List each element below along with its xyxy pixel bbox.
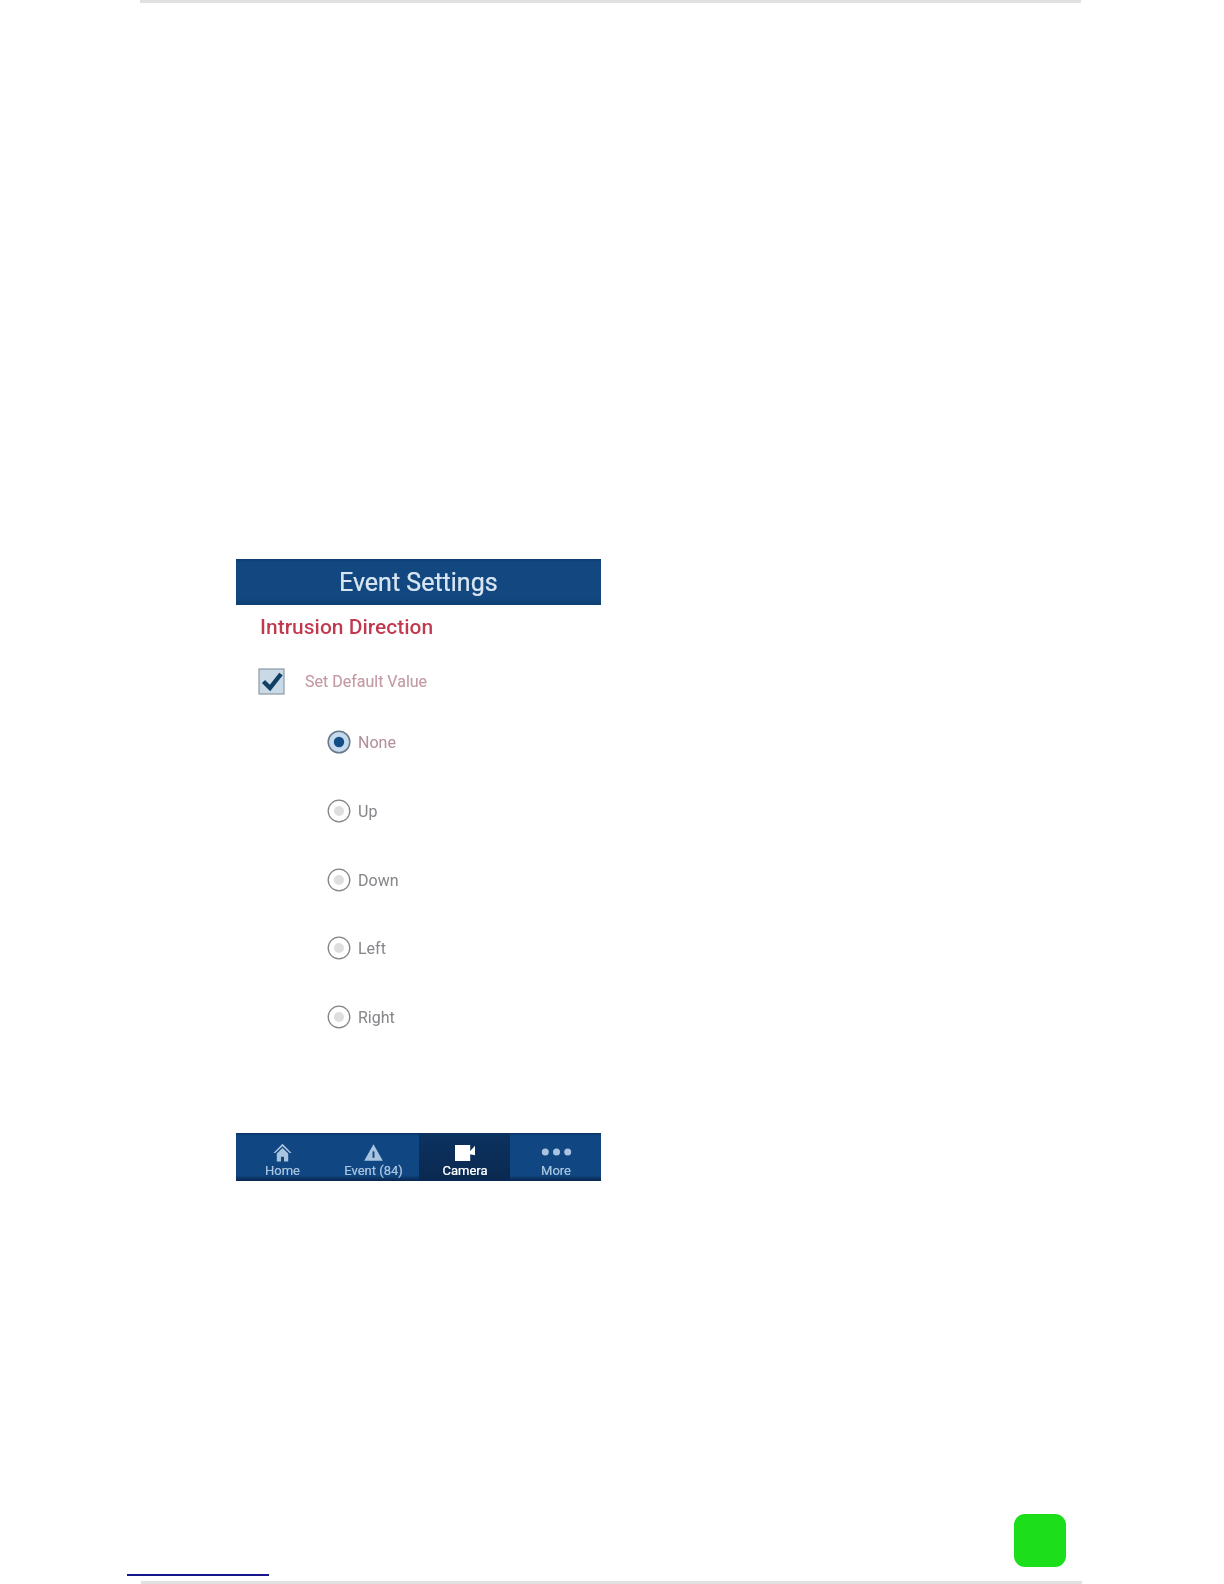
button[interactable]: Left [236,932,601,964]
button[interactable]: More [510,1133,601,1181]
button[interactable]: Events [328,1133,419,1181]
staticText: Home [265,1163,300,1178]
button[interactable]: Right [236,1001,601,1033]
staticText: Intrusion Direction [260,615,434,640]
staticText: Event Settings [339,568,498,597]
staticText: Left [358,939,386,958]
staticText: More [541,1163,571,1178]
staticText: Up [358,802,378,821]
staticText: Camera [442,1163,488,1178]
button[interactable]: None [236,726,601,758]
staticText: Down [358,871,399,890]
staticText: None [358,733,396,752]
button[interactable]: Camera [419,1133,510,1181]
button[interactable]: Down [236,864,601,896]
staticText: Set Default Value [305,672,428,691]
button[interactable]: Set Default Value [236,667,601,695]
staticText: Right [358,1008,395,1027]
staticText: Event (84) [344,1163,403,1178]
button[interactable]: Home [236,1133,328,1181]
button[interactable]: Event Settings [236,559,601,605]
button[interactable]: Up [236,795,601,827]
